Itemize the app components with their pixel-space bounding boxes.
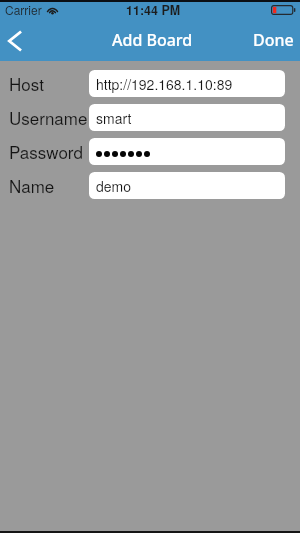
button[interactable]: demo (89, 172, 285, 199)
staticText: smart (96, 108, 132, 128)
staticText: Username (9, 105, 88, 129)
staticText: Done (253, 29, 294, 51)
button[interactable]: smart (89, 104, 285, 131)
staticText: Password (9, 139, 83, 163)
staticText: Name (9, 173, 55, 197)
button[interactable]: http://192.168.1.10:89 (89, 70, 285, 97)
staticText: Add Board (112, 29, 193, 51)
staticText: http://192.168.1.10:89 (96, 74, 233, 94)
button[interactable]: Back (0, 20, 38, 61)
staticText: 11:44 PM (126, 1, 181, 19)
staticText: Carrier (5, 1, 42, 18)
staticText: Host (9, 71, 44, 95)
staticText: demo (96, 176, 132, 196)
button[interactable]: Done (243, 20, 300, 61)
button[interactable] (89, 138, 285, 165)
